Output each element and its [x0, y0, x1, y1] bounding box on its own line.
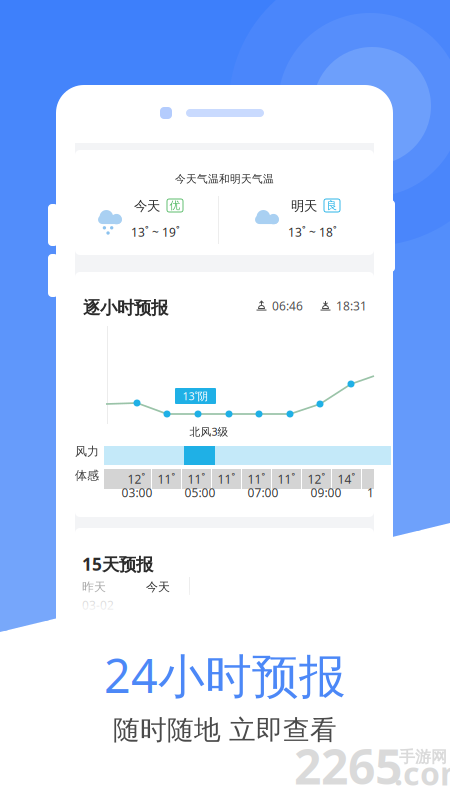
staticText: 11˚	[277, 471, 295, 487]
staticText: 13˚ ~ 18˚	[288, 224, 337, 240]
staticText: 今天气温和明天气温	[175, 172, 274, 185]
staticText: 24小时预报	[104, 644, 346, 706]
staticText: 1	[367, 484, 374, 500]
staticText: 12˚	[307, 471, 325, 487]
staticText: 良	[326, 199, 337, 212]
staticText: 03:00	[121, 484, 152, 500]
staticText: 优	[169, 199, 180, 212]
staticText: 12˚	[127, 471, 145, 487]
staticText: 体感	[75, 468, 99, 483]
staticText: 随时随地 立即查看	[113, 714, 337, 746]
staticText: 07:00	[247, 484, 278, 500]
staticText: 11˚	[217, 471, 235, 487]
staticText: 逐小时预报	[83, 297, 168, 319]
staticText: 18:31	[336, 298, 367, 314]
staticText: 北风3级	[189, 424, 228, 439]
staticText: 11˚	[157, 471, 175, 487]
staticText: 15天预报	[82, 552, 153, 575]
staticText: 05:00	[184, 484, 215, 500]
staticText: 明天	[291, 198, 317, 214]
staticText: 今天	[134, 198, 160, 214]
staticText: 11˚	[247, 471, 265, 487]
staticText: 11˚	[187, 471, 205, 487]
staticText: .com	[394, 752, 450, 794]
staticText: 手游网	[399, 747, 447, 767]
staticText: 03-02	[82, 597, 114, 613]
staticText: 14˚	[337, 471, 355, 487]
staticText: 风力	[75, 444, 99, 459]
staticText: 今天	[146, 580, 170, 594]
staticText: 13˚阴	[182, 389, 208, 403]
staticText: 13˚ ~ 19˚	[131, 224, 180, 240]
staticText: 06:46	[272, 298, 303, 314]
staticText: 昨天	[82, 580, 106, 594]
staticText: 09:00	[310, 484, 341, 500]
staticText: 2265	[294, 734, 402, 798]
